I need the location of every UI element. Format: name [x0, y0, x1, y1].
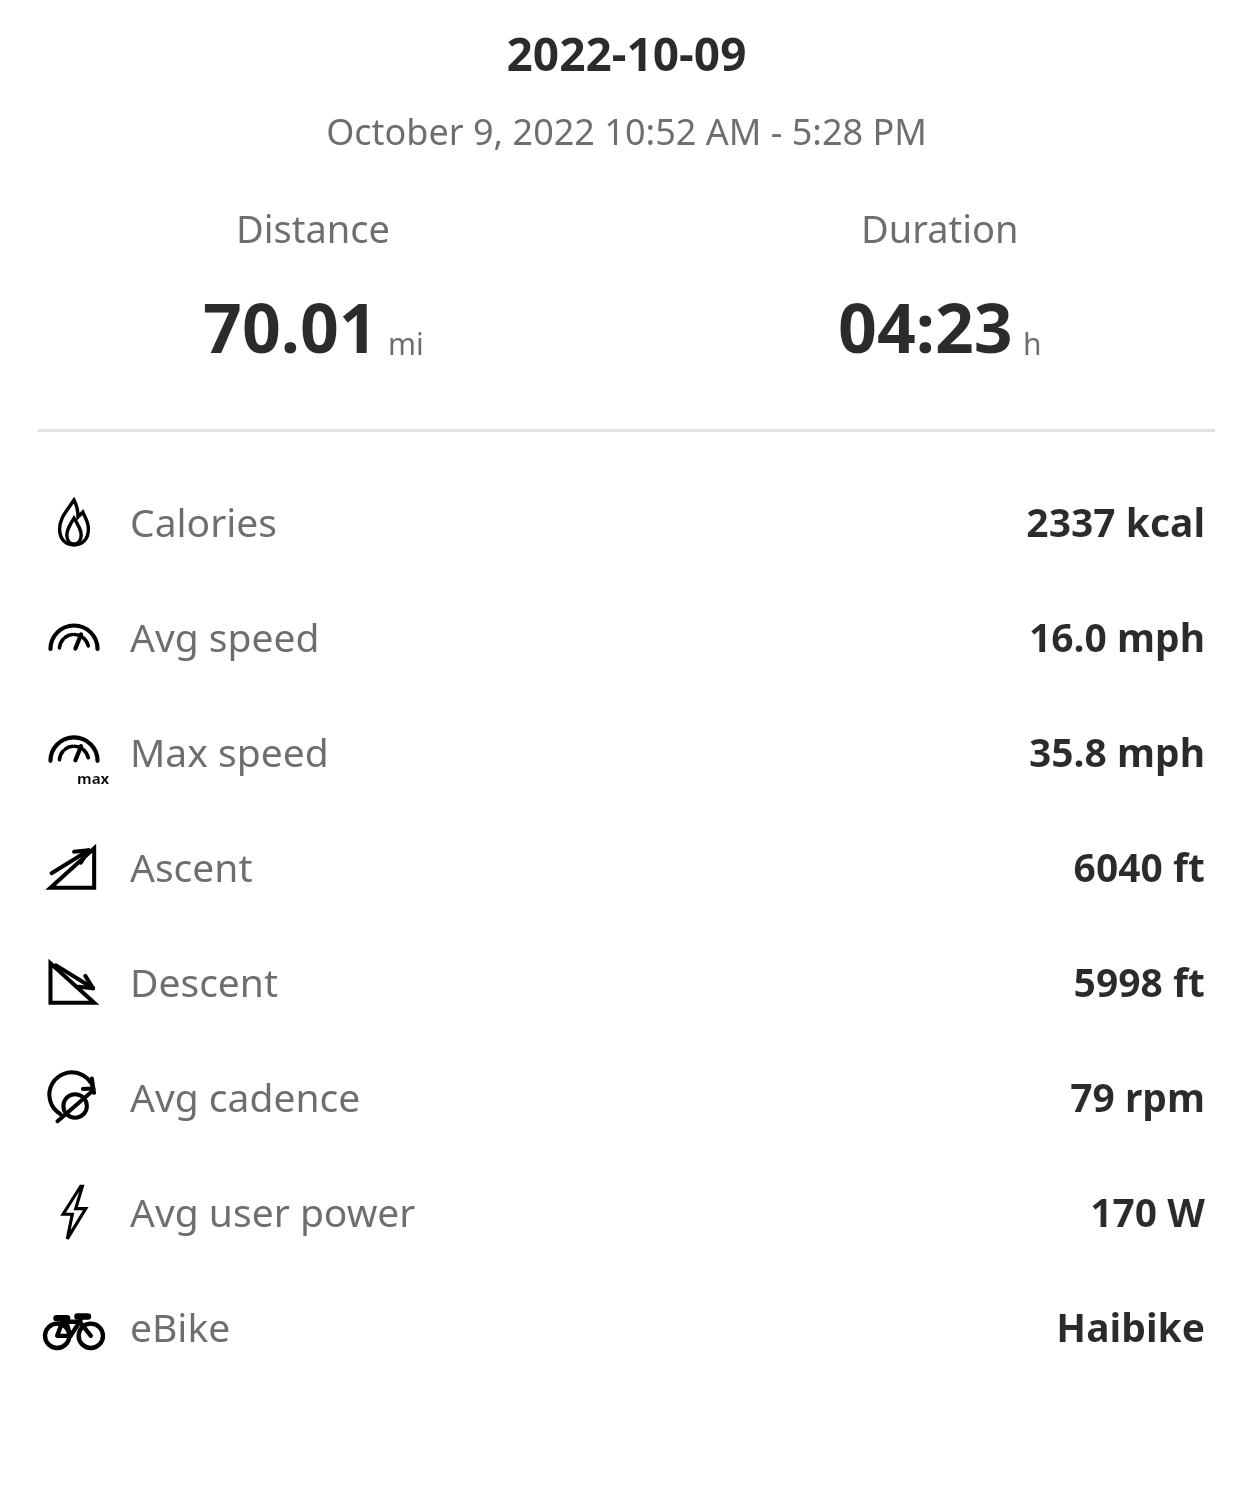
staticText: Max speed	[130, 725, 1028, 778]
staticText: Haibike	[1056, 1300, 1205, 1353]
staticText: eBike	[130, 1300, 1056, 1353]
button[interactable]: Avg speed	[0, 579, 1253, 694]
staticText: 5998 ft	[1073, 955, 1205, 1008]
staticText: Duration	[861, 202, 1019, 254]
button[interactable]: Descent	[0, 924, 1253, 1039]
staticText: 79 rpm	[1070, 1070, 1205, 1123]
staticText: mi	[388, 323, 424, 364]
staticText: Avg user power	[130, 1185, 1090, 1238]
staticText: 35.8 mph	[1028, 725, 1205, 778]
staticText: max	[77, 768, 110, 788]
staticText: Avg speed	[130, 610, 1028, 663]
staticText: October 9, 2022 10:52 AM - 5:28 PM	[0, 107, 1253, 156]
staticText: Ascent	[130, 840, 1073, 893]
staticText: 04:23	[838, 280, 1013, 373]
button[interactable]: max	[0, 694, 1253, 809]
staticText: 6040 ft	[1073, 840, 1205, 893]
button[interactable]: eBike	[0, 1269, 1253, 1384]
staticText: Avg cadence	[130, 1070, 1070, 1123]
staticText: 16.0 mph	[1028, 610, 1205, 663]
button[interactable]: Calories	[0, 464, 1253, 579]
staticText: 2337 kcal	[1026, 495, 1205, 548]
button[interactable]: Distance	[0, 202, 626, 373]
staticText: h	[1023, 323, 1042, 364]
button[interactable]: Avg cadence	[0, 1039, 1253, 1154]
button[interactable]: Avg user power	[0, 1154, 1253, 1269]
button[interactable]: Ascent	[0, 809, 1253, 924]
staticText: Distance	[236, 202, 390, 254]
button[interactable]: Duration	[626, 202, 1253, 373]
staticText: 170 W	[1090, 1185, 1205, 1238]
staticText: Calories	[130, 495, 1026, 548]
staticText: Descent	[130, 955, 1073, 1008]
staticText: 2022-10-09	[0, 22, 1253, 85]
staticText: 70.01	[203, 280, 378, 373]
